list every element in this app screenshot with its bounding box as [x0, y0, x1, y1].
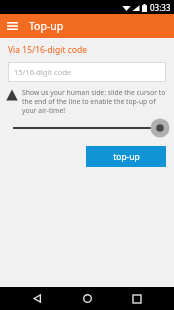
button[interactable]: 15/16-digit code	[8, 62, 166, 82]
staticText: Top-up	[29, 19, 64, 33]
button[interactable]: Open navigation drawer	[0, 14, 24, 38]
button[interactable]: Home	[74, 287, 100, 310]
button[interactable]: Back	[24, 287, 50, 310]
staticText: 15/16-digit code	[14, 67, 72, 77]
staticText: top-up	[113, 151, 140, 163]
staticText: Via 15/16-digit code	[8, 44, 87, 56]
staticText: Show us your human side: slide the curso…	[22, 88, 169, 115]
button[interactable]: Slide to verify	[0, 119, 174, 137]
staticText: 03:33	[150, 2, 171, 13]
button[interactable]: top-up	[86, 146, 166, 167]
button[interactable]: Recent apps	[124, 287, 150, 310]
